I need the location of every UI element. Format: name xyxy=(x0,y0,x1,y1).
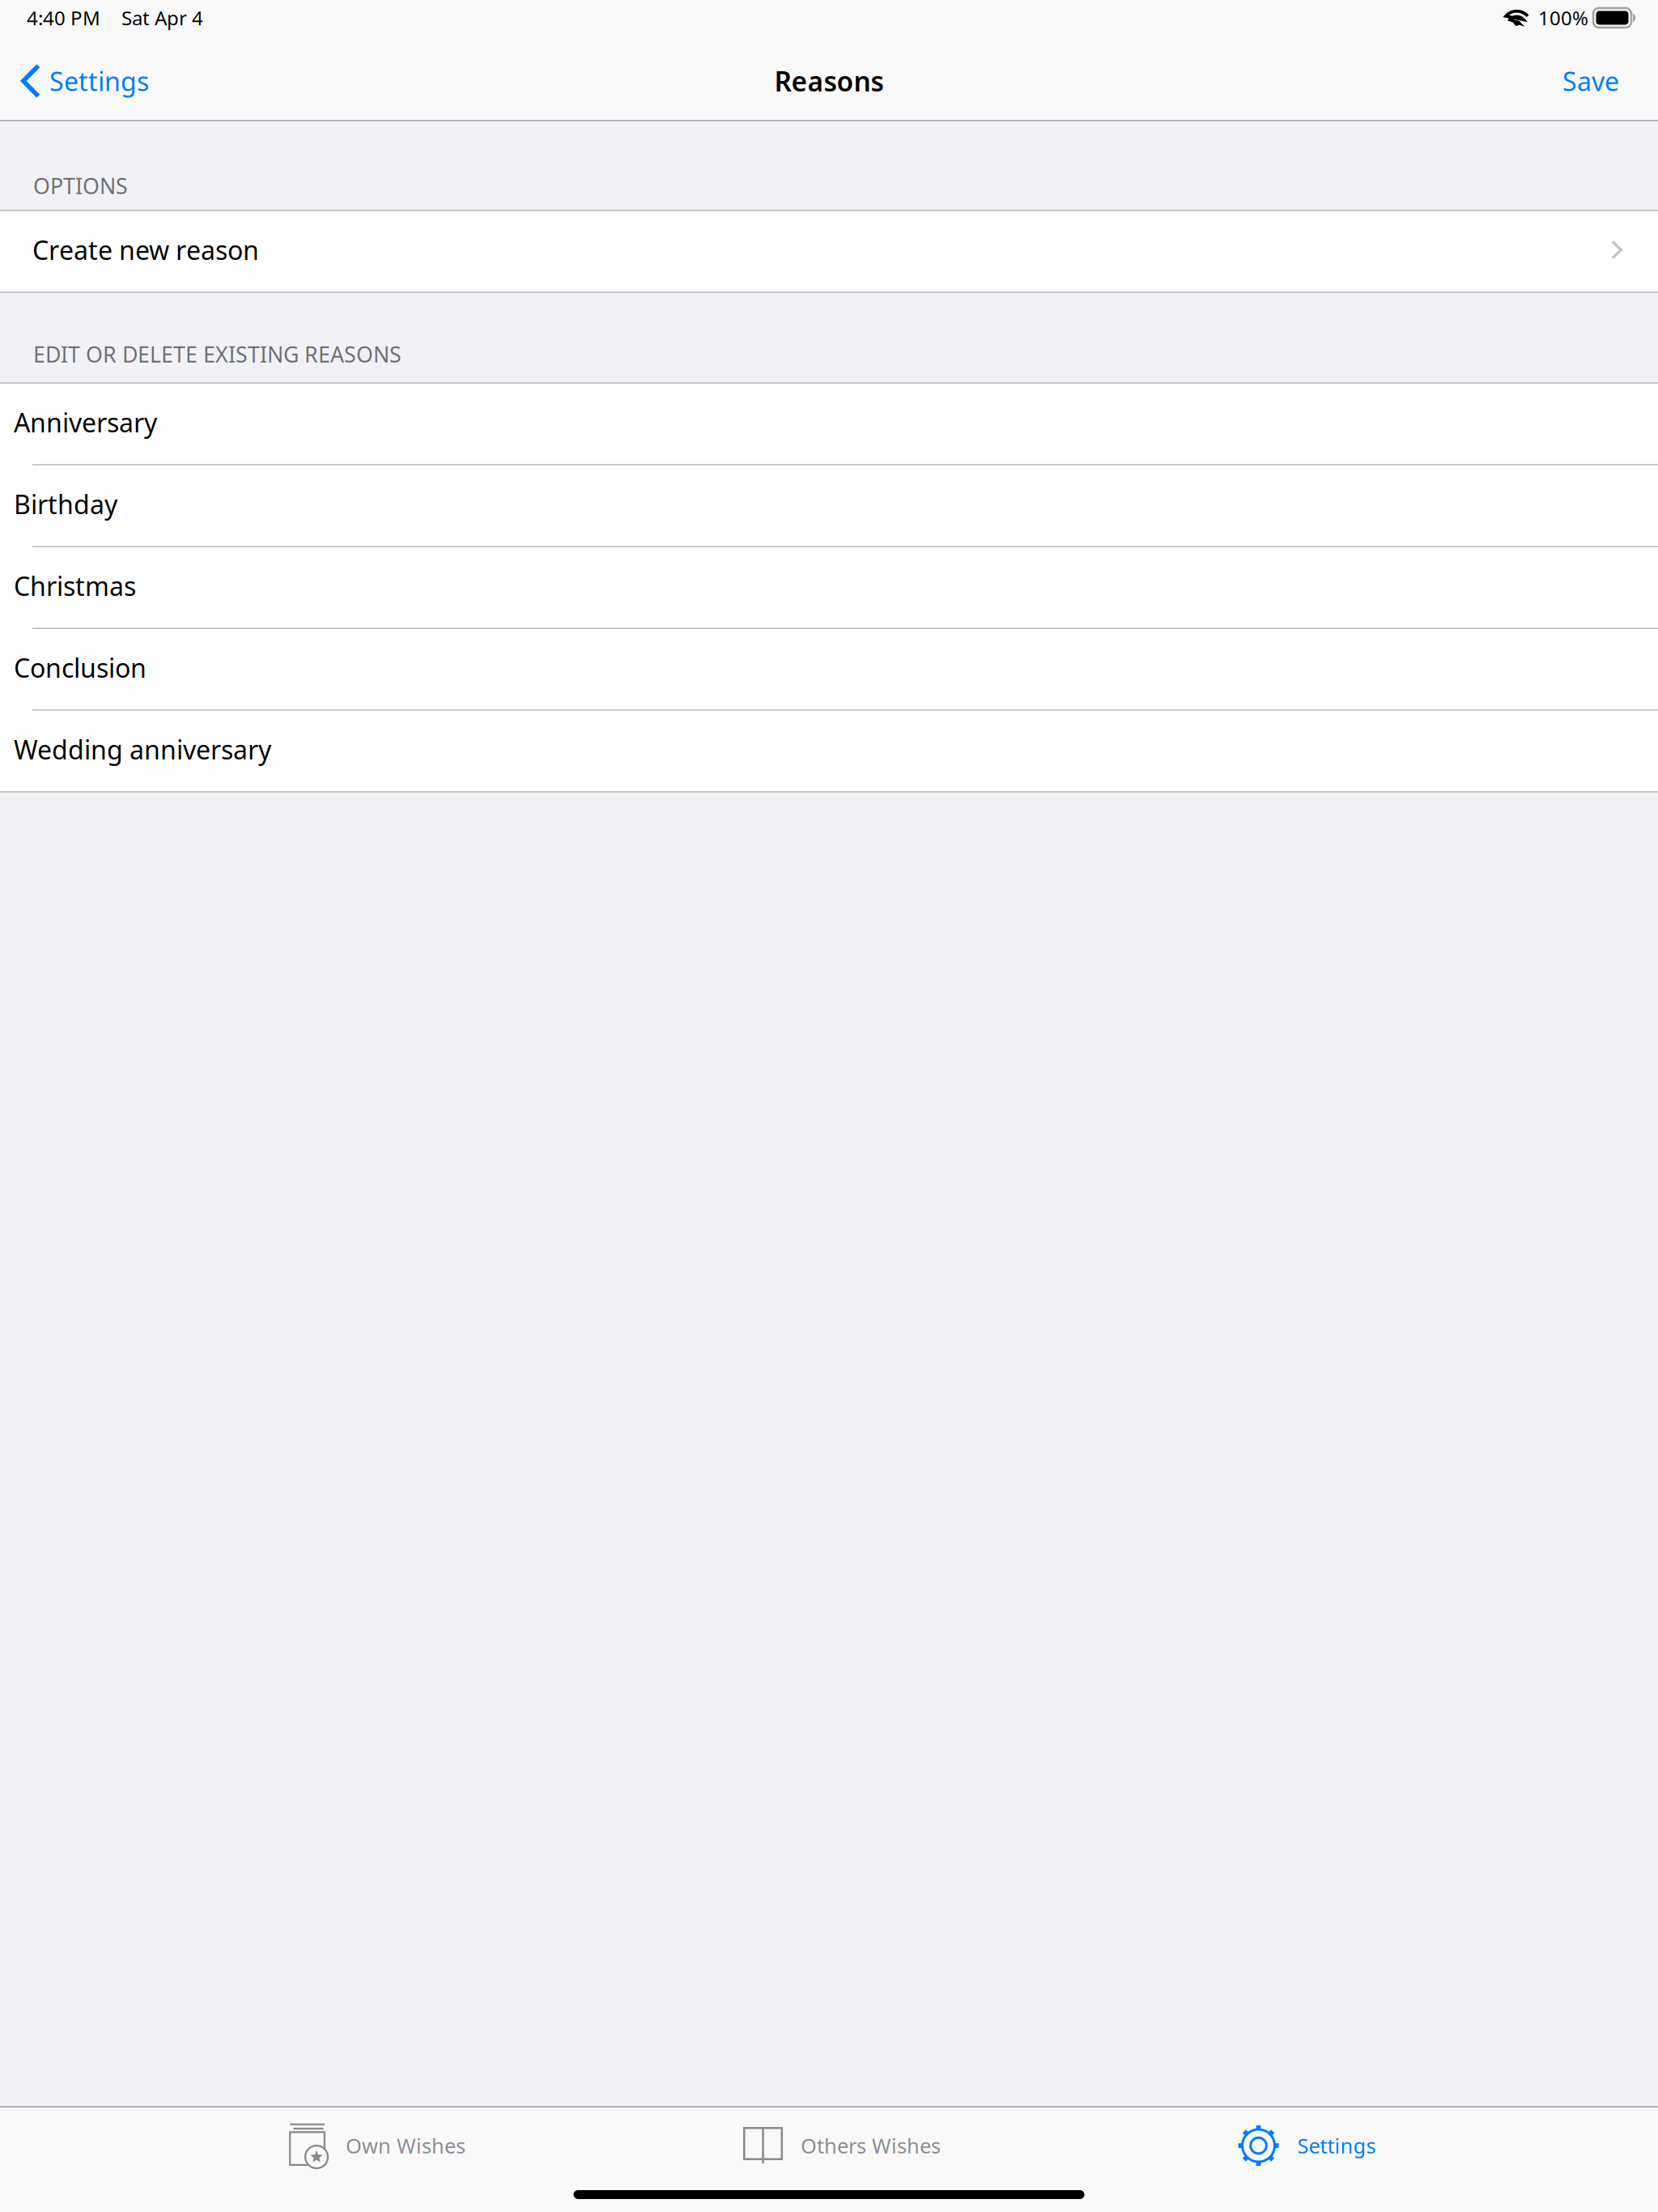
button[interactable]: Create new reason xyxy=(0,211,1658,291)
staticText: EDIT OR DELETE EXISTING REASONS xyxy=(33,340,402,368)
staticText: OPTIONS xyxy=(33,171,128,200)
staticText: Reasons xyxy=(774,63,884,99)
staticText: Own Wishes xyxy=(346,2132,466,2159)
staticText: 4:40 PM xyxy=(27,5,100,31)
staticText: Christmas xyxy=(14,569,136,603)
staticText: Conclusion xyxy=(14,650,147,685)
staticText: Others Wishes xyxy=(801,2132,941,2159)
staticText: Wedding anniversary xyxy=(14,732,271,767)
staticText: Save xyxy=(1562,64,1619,98)
button[interactable]: Settings xyxy=(1074,2108,1539,2184)
staticText: Anniversary xyxy=(14,405,157,439)
button[interactable]: Settings xyxy=(0,42,164,120)
button[interactable]: Conclusion xyxy=(0,629,1658,709)
staticText: Birthday xyxy=(14,487,117,521)
staticText: Sat Apr 4 xyxy=(121,5,203,31)
button[interactable]: Save xyxy=(1541,42,1640,120)
staticText: Settings xyxy=(49,64,149,98)
staticText: Settings xyxy=(1297,2132,1376,2159)
button[interactable]: Anniversary xyxy=(0,384,1658,464)
button[interactable]: Christmas xyxy=(0,547,1658,627)
button[interactable]: Others Wishes xyxy=(610,2108,1074,2184)
button[interactable]: Wedding anniversary xyxy=(0,711,1658,791)
staticText: Create new reason xyxy=(32,233,259,267)
staticText: 100% xyxy=(1538,5,1588,31)
button[interactable]: Birthday xyxy=(0,466,1658,546)
button[interactable]: Own Wishes xyxy=(145,2108,610,2184)
